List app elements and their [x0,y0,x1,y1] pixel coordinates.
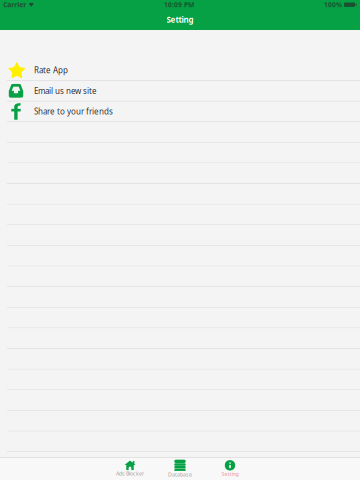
staticText: Carrier [3,0,26,9]
button[interactable]: Email us new site [0,81,360,101]
staticText: Database [168,471,192,478]
staticText: Email us new site [34,85,97,96]
staticText: Setting [166,14,193,25]
button[interactable]: Setting [205,458,255,480]
staticText: Rate App [34,65,68,75]
button[interactable]: Rate App [0,60,360,81]
staticText: Share to your friends [34,106,113,117]
staticText: Setting [221,470,238,478]
staticText: 100% [324,0,342,9]
staticText: 10:09 PM [164,0,194,9]
staticText: Ads Blocker [116,470,144,477]
button[interactable]: Ads Blocker [105,458,155,480]
button[interactable]: Share to your friends [0,101,360,122]
button[interactable]: Database [155,458,205,480]
